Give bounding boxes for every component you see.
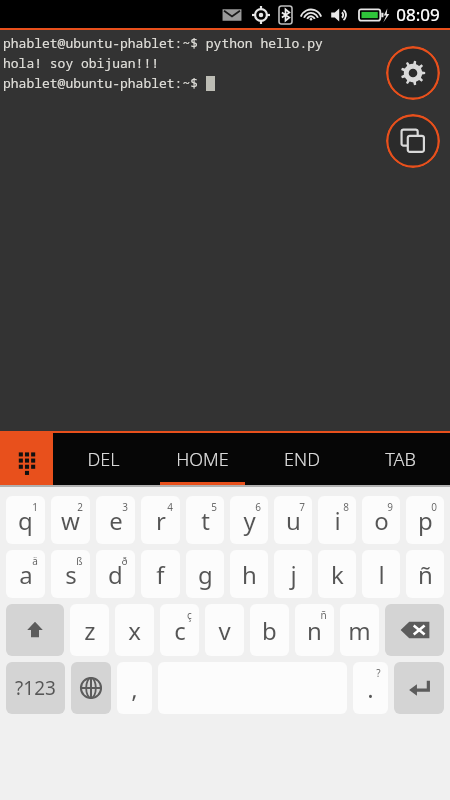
staticText: 9	[387, 500, 393, 514]
staticText: g	[198, 558, 213, 591]
button[interactable]: l	[362, 550, 400, 598]
button[interactable]: HOME	[153, 433, 252, 485]
button[interactable]: b	[250, 604, 289, 656]
button[interactable]: t	[186, 496, 224, 544]
staticText: DEL	[87, 447, 120, 472]
button[interactable]: DEL	[53, 433, 153, 485]
staticText: z	[84, 614, 96, 647]
button[interactable]: c	[160, 604, 199, 656]
staticText: ñ	[418, 558, 433, 591]
other: Battery	[359, 7, 387, 23]
staticText: x	[128, 614, 141, 647]
button[interactable]: j	[274, 550, 312, 598]
button[interactable]: ?123	[6, 662, 65, 714]
button[interactable]: f	[141, 550, 180, 598]
staticText: 7	[299, 500, 305, 514]
staticText: h	[242, 558, 257, 591]
button[interactable]: d	[96, 550, 135, 598]
staticText: p	[418, 504, 433, 537]
staticText: 3	[122, 500, 128, 514]
staticText: ð	[121, 554, 128, 568]
staticText: 2	[77, 500, 83, 514]
button[interactable]: h	[230, 550, 268, 598]
button[interactable]: .	[353, 662, 388, 714]
staticText: HOME	[176, 447, 229, 472]
button[interactable]: n	[295, 604, 334, 656]
button[interactable]: Backspace	[385, 604, 444, 656]
staticText: 08:09	[396, 3, 440, 26]
button[interactable]: x	[115, 604, 154, 656]
button[interactable]: s	[51, 550, 90, 598]
button[interactable]: u	[274, 496, 312, 544]
staticText: ,	[131, 672, 138, 705]
button[interactable]: Shift	[6, 604, 64, 656]
button[interactable]: END	[252, 433, 351, 485]
staticText: hola! soy obijuan!!!	[3, 54, 160, 72]
staticText: w	[61, 504, 80, 537]
button[interactable]: Settings	[386, 46, 440, 100]
button[interactable]: ñ	[406, 550, 444, 598]
staticText: v	[218, 614, 231, 647]
staticText: a	[19, 558, 33, 591]
staticText: ñ	[320, 608, 327, 622]
button[interactable]: ,	[117, 662, 152, 714]
button[interactable]: a	[6, 550, 45, 598]
staticText: 0	[431, 500, 437, 514]
button[interactable]: y	[230, 496, 268, 544]
staticText: c	[174, 614, 186, 647]
button[interactable]: r	[141, 496, 180, 544]
button[interactable]: v	[205, 604, 244, 656]
staticText: ä	[32, 554, 38, 568]
button[interactable]: m	[340, 604, 379, 656]
staticText: y	[243, 504, 256, 537]
button[interactable]: Enter	[394, 662, 444, 714]
staticText: ?123	[15, 675, 56, 701]
button[interactable]: i	[318, 496, 356, 544]
staticText: b	[262, 614, 277, 647]
button[interactable]: p	[406, 496, 444, 544]
other: Wi-Fi	[301, 6, 321, 23]
button[interactable]: z	[70, 604, 109, 656]
staticText: l	[378, 558, 385, 591]
button[interactable]: o	[362, 496, 400, 544]
staticText: 5	[211, 500, 217, 514]
staticText: e	[109, 504, 123, 537]
staticText: n	[307, 614, 322, 647]
staticText: phablet@ubuntu-phablet:~$	[3, 74, 206, 92]
staticText: k	[331, 558, 344, 591]
other: Volume	[330, 7, 350, 23]
button[interactable]: TAB	[351, 433, 450, 485]
staticText: r	[156, 504, 166, 537]
button[interactable]: Tabs	[386, 114, 440, 168]
staticText: 8	[343, 500, 349, 514]
staticText: f	[156, 558, 165, 591]
staticText: 1	[32, 500, 38, 514]
staticText: END	[284, 447, 320, 472]
button[interactable]: w	[51, 496, 90, 544]
button[interactable]: q	[6, 496, 45, 544]
staticText: 4	[167, 500, 173, 514]
staticText: o	[374, 504, 389, 537]
staticText: u	[286, 504, 301, 537]
staticText: q	[18, 504, 33, 537]
staticText: ß	[76, 554, 83, 568]
staticText: TAB	[385, 447, 416, 472]
button[interactable]: g	[186, 550, 224, 598]
staticText: j	[290, 558, 297, 591]
button[interactable]: Switch language	[71, 662, 111, 714]
staticText: phablet@ubuntu-phablet:~$ python hello.p…	[3, 34, 323, 52]
staticText: .	[367, 672, 374, 705]
staticText: 6	[255, 500, 261, 514]
button[interactable]: k	[318, 550, 356, 598]
staticText: m	[348, 614, 371, 647]
other: Location	[252, 6, 270, 24]
other: Messages	[221, 7, 243, 23]
staticText: i	[334, 504, 341, 537]
other: Bluetooth	[279, 6, 292, 24]
staticText: ?	[376, 666, 381, 680]
button[interactable]: Keypad	[0, 433, 53, 485]
staticText: s	[65, 558, 77, 591]
staticText: d	[108, 558, 123, 591]
button[interactable]: e	[96, 496, 135, 544]
